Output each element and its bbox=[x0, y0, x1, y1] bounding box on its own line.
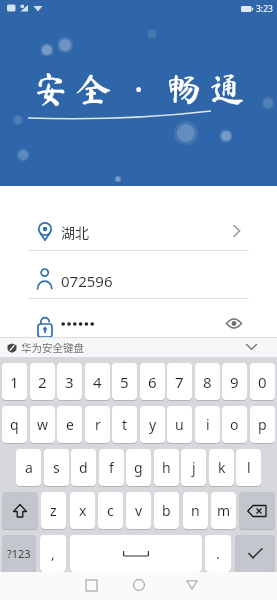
button[interactable]: 6 bbox=[140, 363, 165, 400]
button[interactable]: e bbox=[57, 406, 82, 443]
button[interactable]: d bbox=[71, 449, 96, 486]
staticText: 6 bbox=[148, 372, 157, 392]
staticText: b bbox=[162, 501, 171, 520]
staticText: a bbox=[25, 458, 33, 477]
button[interactable]: , bbox=[40, 535, 66, 572]
staticText: h bbox=[162, 458, 171, 477]
button[interactable]: l bbox=[236, 449, 261, 486]
button[interactable] bbox=[239, 492, 275, 529]
staticText: e bbox=[66, 415, 74, 434]
button[interactable]: n bbox=[183, 492, 208, 529]
button[interactable] bbox=[180, 573, 204, 597]
staticText: 5 bbox=[120, 372, 129, 392]
staticText: o bbox=[230, 415, 239, 434]
staticText: r bbox=[95, 415, 101, 434]
staticText: . bbox=[216, 544, 220, 563]
button[interactable] bbox=[2, 492, 38, 529]
button[interactable]: b bbox=[154, 492, 179, 529]
staticText: 华为安全键盘 bbox=[21, 340, 84, 355]
staticText: 9 bbox=[230, 372, 239, 392]
staticText: 3 bbox=[65, 372, 74, 392]
staticText: 8 bbox=[203, 372, 212, 392]
button[interactable]: 2 bbox=[30, 363, 55, 400]
staticText: m bbox=[217, 501, 231, 520]
button[interactable] bbox=[0, 308, 277, 337]
staticText: d bbox=[79, 458, 88, 477]
staticText: 湖北 bbox=[61, 222, 89, 242]
staticText: 安全 · 畅通 bbox=[33, 65, 253, 113]
staticText: 1 bbox=[10, 372, 19, 392]
button[interactable]: j bbox=[181, 449, 206, 486]
staticText: 072596 bbox=[61, 271, 113, 291]
button[interactable]: z bbox=[41, 492, 66, 529]
button[interactable] bbox=[246, 344, 257, 350]
staticText: 3:23 bbox=[256, 3, 273, 15]
staticText: 7 bbox=[175, 372, 184, 392]
button[interactable] bbox=[79, 573, 103, 597]
button[interactable]: r bbox=[85, 406, 110, 443]
staticText: 2 bbox=[38, 372, 47, 392]
button[interactable]: a bbox=[16, 449, 41, 486]
button[interactable]: 1 bbox=[2, 363, 27, 400]
button[interactable]: 5 bbox=[112, 363, 137, 400]
button[interactable]: . bbox=[205, 535, 231, 572]
staticText: g bbox=[134, 458, 143, 477]
staticText: w bbox=[37, 415, 49, 434]
button[interactable]: 7 bbox=[167, 363, 192, 400]
button[interactable]: w bbox=[30, 406, 55, 443]
button[interactable] bbox=[226, 318, 242, 329]
staticText: s bbox=[53, 458, 60, 477]
button[interactable] bbox=[235, 535, 275, 572]
staticText: x bbox=[79, 501, 87, 520]
button[interactable]: p bbox=[250, 406, 275, 443]
button[interactable]: k bbox=[209, 449, 234, 486]
button[interactable]: u bbox=[167, 406, 192, 443]
staticText: j bbox=[192, 458, 196, 477]
staticText: ?123 bbox=[7, 546, 31, 561]
button[interactable]: x bbox=[70, 492, 95, 529]
staticText: i bbox=[206, 415, 210, 434]
button[interactable]: v bbox=[126, 492, 151, 529]
button[interactable]: i bbox=[195, 406, 220, 443]
staticText: 0 bbox=[258, 372, 267, 392]
staticText: z bbox=[50, 501, 57, 520]
button[interactable]: 0 bbox=[250, 363, 275, 400]
staticText: y bbox=[149, 415, 157, 434]
button[interactable]: s bbox=[44, 449, 69, 486]
staticText: p bbox=[258, 415, 267, 434]
button[interactable]: 072596 bbox=[0, 260, 277, 298]
button[interactable]: h bbox=[154, 449, 179, 486]
button[interactable]: 湖北 bbox=[0, 212, 277, 250]
button[interactable]: g bbox=[126, 449, 151, 486]
staticText: , bbox=[51, 544, 55, 563]
staticText: f bbox=[109, 458, 114, 477]
button[interactable]: 4 bbox=[85, 363, 110, 400]
button[interactable] bbox=[70, 535, 202, 572]
button[interactable]: 3 bbox=[57, 363, 82, 400]
button[interactable]: o bbox=[222, 406, 247, 443]
staticText: 4 bbox=[93, 372, 102, 392]
button[interactable]: c bbox=[98, 492, 123, 529]
staticText: l bbox=[247, 458, 251, 477]
button[interactable]: 9 bbox=[222, 363, 247, 400]
button[interactable]: f bbox=[99, 449, 124, 486]
button[interactable]: m bbox=[211, 492, 236, 529]
button[interactable]: y bbox=[140, 406, 165, 443]
staticText: u bbox=[175, 415, 184, 434]
button[interactable]: q bbox=[2, 406, 27, 443]
button[interactable]: t bbox=[112, 406, 137, 443]
button[interactable] bbox=[127, 573, 151, 597]
staticText: q bbox=[10, 415, 19, 434]
button[interactable]: 8 bbox=[195, 363, 220, 400]
staticText: k bbox=[218, 458, 226, 477]
staticText: n bbox=[191, 501, 200, 520]
staticText: c bbox=[107, 501, 114, 520]
staticText: t bbox=[122, 415, 128, 434]
button[interactable]: ?123 bbox=[2, 535, 36, 572]
staticText: v bbox=[135, 501, 143, 520]
